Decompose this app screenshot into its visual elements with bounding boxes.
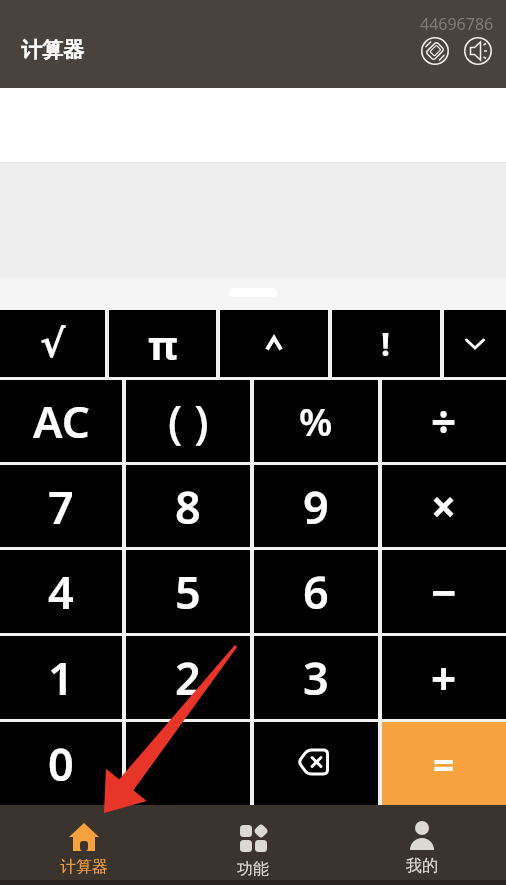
button[interactable] — [421, 37, 449, 65]
staticText: + — [431, 648, 457, 708]
button[interactable] — [126, 722, 250, 805]
button[interactable]: ( ) — [126, 380, 250, 462]
staticText: ÷ — [431, 391, 457, 451]
button[interactable]: − — [382, 550, 506, 633]
staticText: 2 — [175, 647, 201, 708]
staticText: 3 — [303, 647, 329, 708]
staticText: 7 — [48, 476, 74, 537]
button[interactable]: 3 — [254, 636, 378, 719]
staticText: % — [299, 395, 333, 447]
staticText: ( ) — [168, 390, 209, 453]
button[interactable]: 我的 — [337, 805, 506, 885]
button[interactable]: + — [382, 636, 506, 719]
button[interactable]: 0 — [0, 722, 122, 805]
staticText: 计算器 — [21, 37, 84, 63]
staticText: 8 — [175, 476, 201, 537]
button[interactable]: = — [382, 722, 506, 805]
staticText: π — [148, 317, 178, 371]
staticText: − — [431, 562, 457, 622]
staticText: 功能 — [237, 859, 269, 879]
button[interactable]: 4 — [0, 550, 122, 633]
button[interactable]: % — [254, 380, 378, 462]
button[interactable]: 2 — [126, 636, 250, 719]
staticText: 我的 — [406, 856, 438, 876]
staticText: = — [433, 739, 455, 789]
button[interactable]: 7 — [0, 465, 122, 547]
staticText: AC — [33, 391, 90, 451]
button[interactable] — [444, 310, 506, 377]
staticText: 0 — [48, 733, 74, 794]
button[interactable]: ÷ — [382, 380, 506, 462]
staticText: 4 — [48, 561, 74, 622]
button[interactable]: × — [382, 465, 506, 547]
button[interactable]: π — [109, 310, 216, 377]
button[interactable] — [254, 722, 378, 805]
button[interactable] — [220, 310, 328, 377]
staticText: 44696786 — [420, 13, 494, 35]
button[interactable]: 8 — [126, 465, 250, 547]
staticText: 9 — [303, 476, 329, 537]
button[interactable]: √ — [0, 310, 105, 377]
button[interactable]: 计算器 — [0, 805, 168, 885]
staticText: × — [431, 476, 457, 536]
staticText: 1 — [48, 647, 74, 708]
button[interactable]: 5 — [126, 550, 250, 633]
button[interactable]: 9 — [254, 465, 378, 547]
button[interactable]: 功能 — [168, 805, 337, 885]
button[interactable]: 1 — [0, 636, 122, 719]
button[interactable]: ! — [332, 310, 440, 377]
staticText: 6 — [303, 561, 329, 622]
staticText: 计算器 — [60, 857, 108, 877]
button[interactable]: AC — [0, 380, 122, 462]
staticText: √ — [40, 322, 66, 366]
staticText: 5 — [175, 561, 201, 622]
staticText: ! — [381, 322, 391, 366]
button[interactable]: 6 — [254, 550, 378, 633]
button[interactable] — [464, 37, 492, 65]
